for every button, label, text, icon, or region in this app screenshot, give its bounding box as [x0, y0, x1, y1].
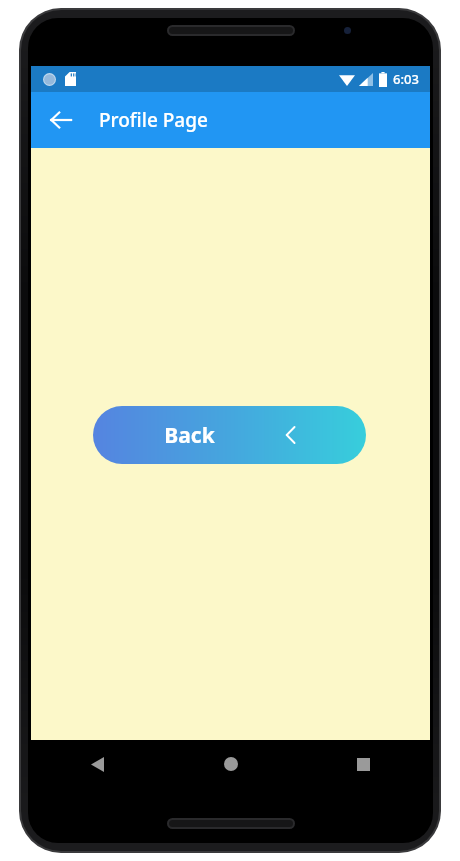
staticText: Back: [164, 421, 215, 450]
staticText: Profile Page: [99, 107, 208, 133]
button[interactable]: Back: [93, 406, 366, 464]
staticText: 6:03: [393, 70, 419, 88]
button[interactable]: Home: [164, 740, 297, 788]
button[interactable]: Navigate up: [37, 96, 85, 144]
button[interactable]: Back: [31, 740, 164, 788]
button[interactable]: Recent apps: [297, 740, 430, 788]
